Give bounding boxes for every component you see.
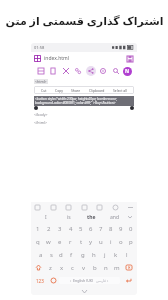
button[interactable]: Space [59, 277, 120, 284]
button[interactable]: j [99, 248, 110, 261]
button[interactable]: v [78, 261, 89, 274]
button[interactable]: r [65, 235, 76, 248]
button[interactable]: Emoji [34, 204, 41, 211]
button[interactable]: Settings [98, 66, 108, 76]
staticText: Select all [113, 88, 127, 93]
button[interactable]: Enter [120, 274, 136, 287]
button[interactable]: Expand suggestions [126, 212, 134, 222]
button[interactable]: d [56, 248, 66, 261]
button[interactable]: l [121, 248, 132, 261]
button[interactable]: GIF [65, 204, 72, 211]
button[interactable]: the [80, 212, 103, 222]
button[interactable]: is [57, 212, 80, 222]
staticText: i [110, 238, 112, 246]
button[interactable]: 2 [43, 222, 54, 235]
button[interactable]: Clock [112, 204, 119, 211]
button[interactable]: Copy [48, 66, 58, 76]
staticText: r [69, 238, 72, 246]
button[interactable]: Translate [81, 204, 88, 211]
button[interactable]: Account [123, 67, 132, 76]
staticText: <html> [35, 79, 47, 84]
button[interactable]: Shift [32, 261, 45, 274]
staticText: g [81, 251, 85, 259]
button[interactable]: x [56, 261, 67, 274]
staticText: j [104, 251, 106, 259]
button[interactable]: 0 [126, 222, 136, 235]
staticText: 0 [129, 225, 133, 233]
button[interactable]: App icon [34, 55, 41, 62]
button[interactable]: Clipboard [89, 86, 105, 94]
button[interactable]: f [66, 248, 77, 261]
staticText: w [46, 238, 51, 246]
button[interactable]: Save [126, 55, 134, 63]
button[interactable]: i [106, 235, 116, 248]
button[interactable]: Copy [55, 86, 63, 94]
button[interactable]: Cut [41, 86, 47, 94]
button[interactable]: Sticker [50, 204, 57, 211]
button[interactable]: Cut [61, 66, 71, 76]
staticText: background-color:#0808f1; color:#fff;" >… [35, 101, 116, 105]
button[interactable]: 3 [54, 222, 65, 235]
staticText: x [60, 264, 64, 272]
button[interactable]: u [96, 235, 106, 248]
button[interactable]: z [45, 261, 56, 274]
button[interactable]: n [100, 261, 111, 274]
button[interactable]: I [34, 212, 57, 222]
button[interactable]: Share [71, 86, 81, 94]
button[interactable]: 5 [76, 222, 86, 235]
staticText: is [67, 214, 71, 221]
button[interactable]: Find [73, 66, 83, 76]
button[interactable]: Edit [96, 204, 103, 211]
staticText: index.html [44, 55, 70, 62]
button[interactable]: Backspace [122, 261, 136, 274]
button[interactable]: e [54, 235, 65, 248]
button[interactable]: g [77, 248, 88, 261]
staticText: and [110, 214, 119, 221]
staticText: Cut [41, 88, 47, 93]
staticText: ‹ [70, 278, 72, 283]
button[interactable]: k [110, 248, 121, 261]
staticText: 1 [36, 225, 40, 233]
button[interactable]: q [32, 235, 43, 248]
staticText: 3 [58, 225, 62, 233]
button[interactable]: Select all [113, 86, 127, 94]
button[interactable]: 8 [106, 222, 116, 235]
staticText: s [50, 251, 53, 259]
staticText: 4 [69, 225, 73, 233]
button[interactable]: b [89, 261, 100, 274]
button[interactable]: Search [111, 66, 121, 76]
button[interactable]: 7 [96, 222, 106, 235]
staticText: <button style="width:230px; height:40px;… [35, 97, 117, 101]
staticText: Copy [55, 88, 63, 93]
button[interactable]: Undo [36, 66, 46, 76]
button[interactable]: More [127, 204, 134, 211]
staticText: 8 [109, 225, 113, 233]
button[interactable]: o [116, 235, 126, 248]
button[interactable]: Link [86, 66, 96, 76]
staticText: e [58, 238, 62, 246]
button[interactable]: c [67, 261, 78, 274]
button[interactable]: m [111, 261, 122, 274]
staticText: N [125, 68, 130, 75]
staticText: c [71, 264, 74, 272]
button[interactable]: Numbers [32, 274, 47, 287]
button[interactable]: Emoji [47, 274, 59, 287]
button[interactable]: h [88, 248, 99, 261]
button[interactable]: 4 [65, 222, 76, 235]
button[interactable]: w [43, 235, 54, 248]
button[interactable]: 6 [86, 222, 96, 235]
button[interactable]: t [76, 235, 86, 248]
staticText: 6 [89, 225, 93, 233]
button[interactable]: a [36, 248, 46, 261]
staticText: اشتراک گذاری قسمتی از متن [5, 13, 164, 28]
button[interactable]: y [86, 235, 96, 248]
button[interactable]: p [126, 235, 136, 248]
staticText: 9 [119, 225, 123, 233]
staticText: a [39, 251, 43, 259]
button[interactable]: 1 [32, 222, 43, 235]
staticText: 123 [36, 278, 44, 284]
button[interactable]: s [46, 248, 56, 261]
button[interactable]: and [103, 212, 126, 222]
staticText: › [107, 278, 109, 283]
button[interactable]: 9 [116, 222, 126, 235]
